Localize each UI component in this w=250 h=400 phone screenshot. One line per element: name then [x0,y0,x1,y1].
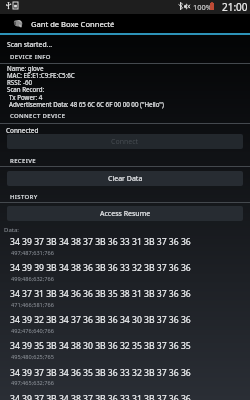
staticText: 499;486;632;766 [11,275,54,283]
button[interactable] [0,308,250,334]
button[interactable]: Clear Data [7,171,243,186]
staticText: Scan Record: [7,85,45,93]
staticText: Connect [111,137,139,147]
staticText: RSSI: -60 [7,78,33,86]
staticText: 471;466;581;766 [11,301,54,309]
staticText: CONNECT DEVICE [10,112,66,120]
staticText: Advertisement Data: 48 65 6C 6C 6F 00 00… [9,100,164,108]
staticText: 100% [193,2,213,12]
staticText: Scan started... [7,40,53,49]
button[interactable] [0,387,250,400]
staticText: DEVICE INFO [10,53,51,61]
other: App icon [13,19,23,28]
staticText: 21:00 [222,0,248,14]
staticText: 34 39 37 3B 34 38 37 3B 36 33 31 3B 37 3… [10,236,191,248]
staticText: 34 39 32 3B 34 37 36 3B 36 34 30 3B 37 3… [10,314,191,326]
staticText: 497;487;631;766 [11,249,54,257]
staticText: HISTORY [10,193,38,201]
staticText: 34 39 37 3B 34 38 37 3B 36 33 31 3B 37 3… [10,393,191,400]
button[interactable] [0,230,250,256]
staticText: Data: [4,226,19,234]
staticText: Clear Data [108,174,143,184]
staticText: 34 39 35 3B 34 38 30 3B 36 32 35 3B 37 3… [10,340,191,352]
staticText: 34 39 39 3B 34 38 36 3B 36 33 32 3B 37 3… [10,262,191,274]
staticText: 34 37 31 3B 34 36 36 3B 35 38 31 3B 37 3… [10,288,191,300]
staticText: MAC: EE:E1:C9:FE:C5:6C [7,71,75,79]
button[interactable] [0,282,250,308]
staticText: 492;476;640;766 [11,327,54,335]
button[interactable]: Access Resume [7,206,243,221]
staticText: 495;480;625;765 [11,353,54,361]
staticText: RECEIVE [10,157,36,165]
staticText: Name: glove [7,64,44,72]
staticText: 34 39 37 3B 34 36 35 3B 36 33 32 3B 37 3… [10,367,191,379]
staticText: Tx Power: 4 [9,93,43,101]
staticText: Connected [6,126,39,135]
button[interactable] [0,256,250,282]
button[interactable] [0,334,250,360]
button[interactable] [0,361,250,387]
staticText: Access Resume [100,209,151,219]
staticText: 497;465;632;766 [11,379,54,387]
staticText: Gant de Boxe Connecté [31,19,115,29]
